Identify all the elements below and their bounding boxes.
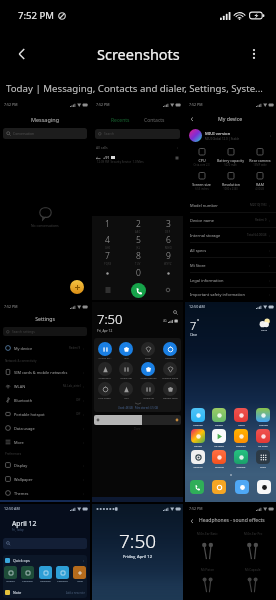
button[interactable]: WLAN xyxy=(5,379,85,393)
button[interactable]: 2 xyxy=(123,218,153,234)
button[interactable]: CPU xyxy=(188,148,215,167)
button[interactable]: 12:50 AM xyxy=(185,302,276,502)
staticText: 0 xyxy=(136,267,141,279)
button[interactable]: App xyxy=(235,480,249,494)
button[interactable]: Silent xyxy=(137,342,159,360)
staticText: Messaging xyxy=(0,116,90,123)
button[interactable]: 7:52 PM xyxy=(0,302,90,502)
button[interactable]: Rear camera xyxy=(246,148,273,167)
button[interactable]: Brightness xyxy=(94,415,181,425)
button[interactable]: GPS xyxy=(115,382,137,400)
button[interactable]: Mi Store xyxy=(190,258,271,272)
button[interactable]: Mobile da xyxy=(137,382,159,400)
button[interactable]: Battery saver xyxy=(159,382,181,400)
button[interactable]: Legal information xyxy=(190,273,271,287)
button[interactable]: Screen size xyxy=(188,172,215,191)
button[interactable]: My device xyxy=(5,341,85,355)
button[interactable]: Mi In-Ear Basic xyxy=(185,532,230,560)
button[interactable]: Screen gesture xyxy=(137,362,159,380)
button[interactable]: RAM xyxy=(246,172,273,191)
button[interactable]: Themes xyxy=(5,486,85,500)
button[interactable]: Passbook xyxy=(21,566,34,586)
button[interactable]: 7:50 xyxy=(92,504,183,600)
button[interactable]: Wallpaper xyxy=(5,472,85,486)
button[interactable]: Password xyxy=(56,566,69,586)
button[interactable]: Mi In-Ear Pro xyxy=(230,532,276,560)
button[interactable]: Tools xyxy=(252,450,274,468)
button[interactable]: MIUI version xyxy=(189,129,272,142)
button[interactable]: 9 xyxy=(153,250,183,266)
button[interactable]: Mobile dat xyxy=(115,362,137,380)
staticText: April 12 xyxy=(12,519,37,528)
button[interactable]: Flashlight xyxy=(159,342,181,360)
button[interactable]: Lock screen xyxy=(94,382,115,400)
button[interactable]: 3 xyxy=(153,218,183,234)
button[interactable]: Settings xyxy=(187,450,208,468)
button[interactable]: Back xyxy=(0,32,44,76)
button[interactable]: Screenshot xyxy=(94,362,115,380)
button[interactable]: Display xyxy=(5,458,85,472)
button[interactable]: 7:52 PM xyxy=(185,100,276,300)
button[interactable]: Mi Video xyxy=(208,429,230,447)
staticText: Data usage xyxy=(14,426,35,431)
button[interactable]: Call xyxy=(131,283,146,298)
button[interactable]: New conversation xyxy=(70,280,84,294)
button[interactable]: Themes xyxy=(252,408,274,426)
button[interactable]: Device name xyxy=(190,213,271,227)
staticText: › xyxy=(269,203,271,208)
button[interactable]: 7:52 PM xyxy=(92,100,183,300)
button[interactable]: Browser xyxy=(230,429,252,447)
button[interactable]: Keypad xyxy=(92,280,123,300)
button[interactable]: Model number xyxy=(190,198,271,212)
button[interactable]: 7:52 PM xyxy=(0,100,90,300)
button[interactable]: Voicemail xyxy=(153,280,183,300)
button[interactable]: Resolution xyxy=(217,172,244,191)
button[interactable]: Reminder xyxy=(39,566,52,586)
button[interactable]: 4 xyxy=(92,234,123,250)
staticText: +91 xyxy=(103,155,110,160)
button[interactable]: Important safety information xyxy=(190,288,271,300)
staticText: Off xyxy=(76,398,81,402)
button[interactable]: Mi Piston xyxy=(185,568,230,593)
staticText: 4G xyxy=(163,319,167,323)
button[interactable]: Weather xyxy=(187,408,208,426)
button[interactable]: App xyxy=(212,480,226,494)
button[interactable]: Scanner xyxy=(230,450,252,468)
button[interactable]: 5 xyxy=(123,234,153,250)
button[interactable]: More xyxy=(5,435,85,449)
button[interactable]: Quick ops xyxy=(5,558,85,563)
button[interactable]: Security xyxy=(208,450,230,468)
button[interactable]: 12:50 AM xyxy=(0,504,90,600)
button[interactable]: 7:50 xyxy=(92,302,183,502)
button[interactable]: Mi Store xyxy=(252,429,274,447)
button[interactable]: 8 xyxy=(123,250,153,266)
button[interactable]: 6 xyxy=(153,234,183,250)
button[interactable] xyxy=(153,266,183,280)
button[interactable]: VPN xyxy=(115,342,137,360)
button[interactable]: Mi Capsule xyxy=(230,568,276,593)
button[interactable]: Note xyxy=(5,590,85,595)
button[interactable]: Portable hotspot xyxy=(5,407,85,421)
button[interactable] xyxy=(92,266,123,280)
button[interactable]: More options xyxy=(232,32,276,76)
button[interactable]: 7:52 PM xyxy=(185,504,276,600)
button[interactable]: 1 xyxy=(92,218,123,234)
button[interactable]: Battery capacity xyxy=(217,148,244,167)
button[interactable]: Airplane mode xyxy=(159,362,181,380)
button[interactable]: 0 xyxy=(123,266,153,280)
button[interactable]: Music xyxy=(230,408,252,426)
button[interactable]: Gallery xyxy=(208,408,230,426)
button[interactable]: App xyxy=(190,480,204,494)
button[interactable]: SIM cards & mobile networks xyxy=(5,365,85,379)
button[interactable]: Student xyxy=(4,566,17,586)
button[interactable]: Internal storage xyxy=(190,228,271,242)
button[interactable]: Data usage xyxy=(5,421,85,435)
button[interactable]: App xyxy=(257,480,271,494)
button[interactable]: Bluetooth xyxy=(5,393,85,407)
staticText: › xyxy=(269,233,271,238)
button[interactable]: Games xyxy=(187,429,208,447)
button[interactable]: More xyxy=(73,566,86,586)
button[interactable]: Wi-Fi & Int... xyxy=(94,342,115,360)
button[interactable]: All specs xyxy=(190,243,271,257)
button[interactable]: 7 xyxy=(92,250,123,266)
